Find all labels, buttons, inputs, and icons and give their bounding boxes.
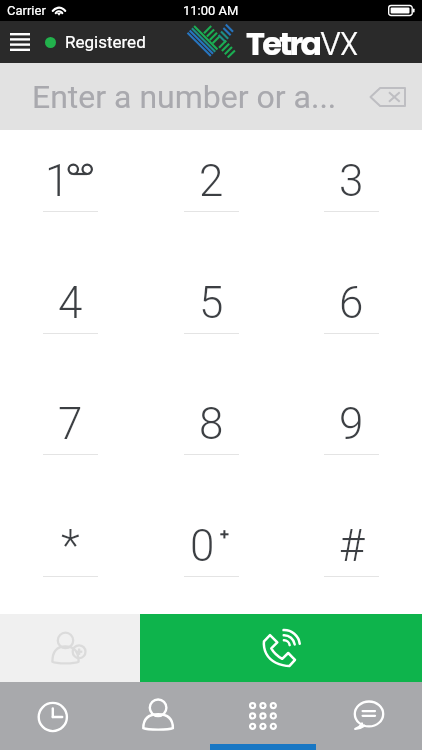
button[interactable]: 9 <box>281 380 422 472</box>
button[interactable]: Menu <box>0 21 40 63</box>
button[interactable]: 4 <box>0 259 141 351</box>
staticText: 11:00 AM <box>183 3 239 18</box>
button[interactable]: 2 <box>141 137 282 229</box>
button[interactable]: Messages <box>316 682 422 750</box>
staticText: # <box>339 520 365 572</box>
staticText: Enter a number or a... <box>32 78 337 116</box>
staticText: 3 <box>339 155 364 207</box>
staticText: 1 <box>45 155 70 207</box>
staticText: 0 <box>190 520 215 572</box>
staticText: Registered <box>65 32 146 52</box>
button[interactable]: 8 <box>141 380 282 472</box>
button[interactable]: * <box>0 502 141 594</box>
button[interactable]: # <box>281 502 422 594</box>
button[interactable]: Contacts <box>105 682 210 750</box>
button[interactable]: 1 <box>0 137 141 229</box>
staticText: VX <box>320 21 358 63</box>
staticText: 6 <box>339 277 364 329</box>
button[interactable]: 0 <box>141 502 282 594</box>
button[interactable]: Dialpad <box>210 682 316 750</box>
staticText: 5 <box>199 277 224 329</box>
staticText: 2 <box>199 155 224 207</box>
staticText: 7 <box>58 398 83 450</box>
button[interactable]: 7 <box>0 380 141 472</box>
button[interactable]: 6 <box>281 259 422 351</box>
button[interactable]: Recents <box>0 682 105 750</box>
button[interactable]: Add contact <box>0 614 140 682</box>
staticText: Carrier <box>7 3 46 18</box>
button[interactable]: Call <box>140 614 422 682</box>
button[interactable]: 3 <box>281 137 422 229</box>
staticText: * <box>61 520 80 572</box>
button[interactable]: 5 <box>141 259 282 351</box>
button[interactable]: Backspace <box>359 74 415 120</box>
staticText: 8 <box>199 398 224 450</box>
staticText: Tetra <box>246 21 320 63</box>
staticText: 9 <box>339 398 364 450</box>
staticText: 4 <box>58 277 83 329</box>
